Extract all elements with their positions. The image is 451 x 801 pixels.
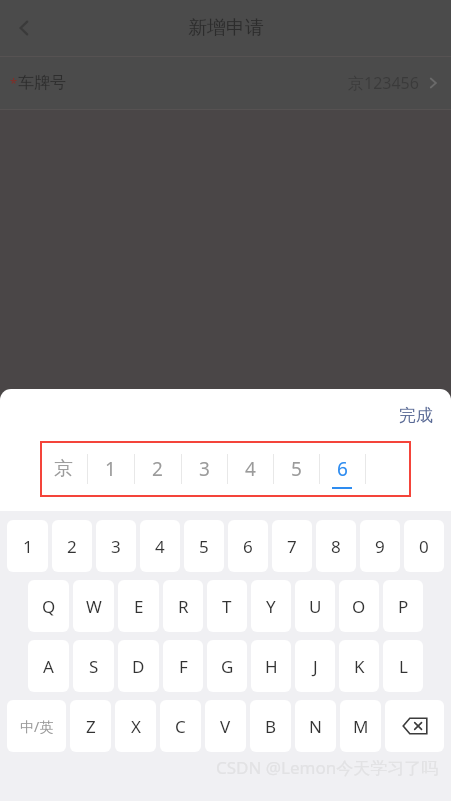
button[interactable]: 0 [404, 520, 444, 572]
button[interactable]: R [163, 580, 203, 632]
staticText: Z [86, 715, 96, 738]
staticText: O [352, 595, 366, 618]
button[interactable]: Q [28, 580, 69, 632]
staticText: 中/英 [20, 717, 54, 736]
button[interactable]: 5 [184, 520, 224, 572]
staticText: 京123456 [348, 72, 419, 94]
staticText: 4 [245, 456, 256, 482]
staticText: 6 [243, 535, 253, 558]
staticText: E [134, 595, 144, 618]
button[interactable]: Backspace [385, 700, 444, 752]
button[interactable]: C [160, 700, 201, 752]
button[interactable]: K [339, 640, 379, 692]
button[interactable]: L [383, 640, 423, 692]
staticText: 7 [287, 535, 297, 558]
staticText: 1 [23, 535, 33, 558]
staticText: 新增申请 [188, 16, 264, 40]
staticText: 1 [105, 456, 116, 482]
staticText: Q [42, 595, 56, 618]
staticText: 5 [291, 456, 302, 482]
button[interactable]: H [251, 640, 291, 692]
button[interactable]: 1 [87, 441, 134, 497]
button[interactable]: 7 [272, 520, 312, 572]
staticText: 2 [152, 456, 163, 482]
staticText: 5 [199, 535, 209, 558]
button[interactable]: O [339, 580, 379, 632]
staticText: M [353, 715, 369, 738]
staticText: U [309, 595, 322, 618]
button[interactable]: U [295, 580, 335, 632]
button[interactable]: 6 [228, 520, 268, 572]
button[interactable]: X [115, 700, 156, 752]
button[interactable]: 9 [360, 520, 400, 572]
staticText: 4 [155, 535, 165, 558]
staticText: F [179, 655, 188, 678]
staticText: 8 [331, 535, 341, 558]
staticText: H [265, 655, 278, 678]
staticText: C [175, 715, 186, 738]
button[interactable]: T [207, 580, 247, 632]
staticText: CSDN @Lemon今天学习了吗 [216, 756, 439, 779]
button[interactable]: 中/英 [7, 700, 66, 752]
button[interactable]: F [163, 640, 203, 692]
button[interactable]: 完成 [381, 395, 451, 436]
staticText: 9 [375, 535, 385, 558]
staticText: D [132, 655, 145, 678]
staticText: 京 [54, 457, 73, 481]
button[interactable]: V [205, 700, 246, 752]
button[interactable]: 3 [181, 441, 227, 497]
button[interactable]: 京 [40, 441, 87, 497]
button[interactable]: 1 [7, 520, 48, 572]
button[interactable]: 3 [96, 520, 136, 572]
staticText: * [10, 74, 18, 92]
staticText: G [221, 655, 234, 678]
button[interactable] [365, 441, 411, 497]
staticText: W [86, 595, 102, 618]
staticText: S [89, 655, 99, 678]
button[interactable]: 8 [316, 520, 356, 572]
button[interactable]: Z [70, 700, 111, 752]
button[interactable]: 6 [319, 441, 365, 497]
staticText: K [354, 655, 365, 678]
button[interactable]: 2 [52, 520, 92, 572]
button[interactable]: Y [251, 580, 291, 632]
button[interactable]: G [207, 640, 247, 692]
button[interactable]: P [383, 580, 423, 632]
staticText: 6 [337, 456, 348, 482]
button[interactable]: A [28, 640, 69, 692]
staticText: A [43, 655, 54, 678]
button[interactable]: 4 [227, 441, 273, 497]
staticText: T [222, 595, 232, 618]
staticText: L [399, 655, 408, 678]
button[interactable]: N [295, 700, 336, 752]
button[interactable]: W [73, 580, 114, 632]
button[interactable]: 4 [140, 520, 180, 572]
button[interactable]: D [118, 640, 159, 692]
staticText: 3 [199, 456, 210, 482]
button[interactable]: S [73, 640, 114, 692]
staticText: R [178, 595, 189, 618]
button[interactable]: 2 [134, 441, 181, 497]
staticText: V [220, 715, 231, 738]
staticText: 完成 [399, 405, 433, 426]
button[interactable]: J [295, 640, 335, 692]
staticText: J [313, 655, 318, 678]
staticText: P [398, 595, 409, 618]
button[interactable]: B [250, 700, 291, 752]
staticText: 2 [67, 535, 77, 558]
staticText: N [309, 715, 322, 738]
staticText: B [265, 715, 277, 738]
button[interactable]: M [340, 700, 381, 752]
staticText: 3 [111, 535, 121, 558]
staticText: 车牌号 [18, 73, 66, 93]
staticText: X [131, 715, 141, 738]
button[interactable]: E [118, 580, 159, 632]
staticText: Y [266, 595, 276, 618]
button[interactable]: 5 [273, 441, 319, 497]
staticText: 0 [419, 535, 429, 558]
